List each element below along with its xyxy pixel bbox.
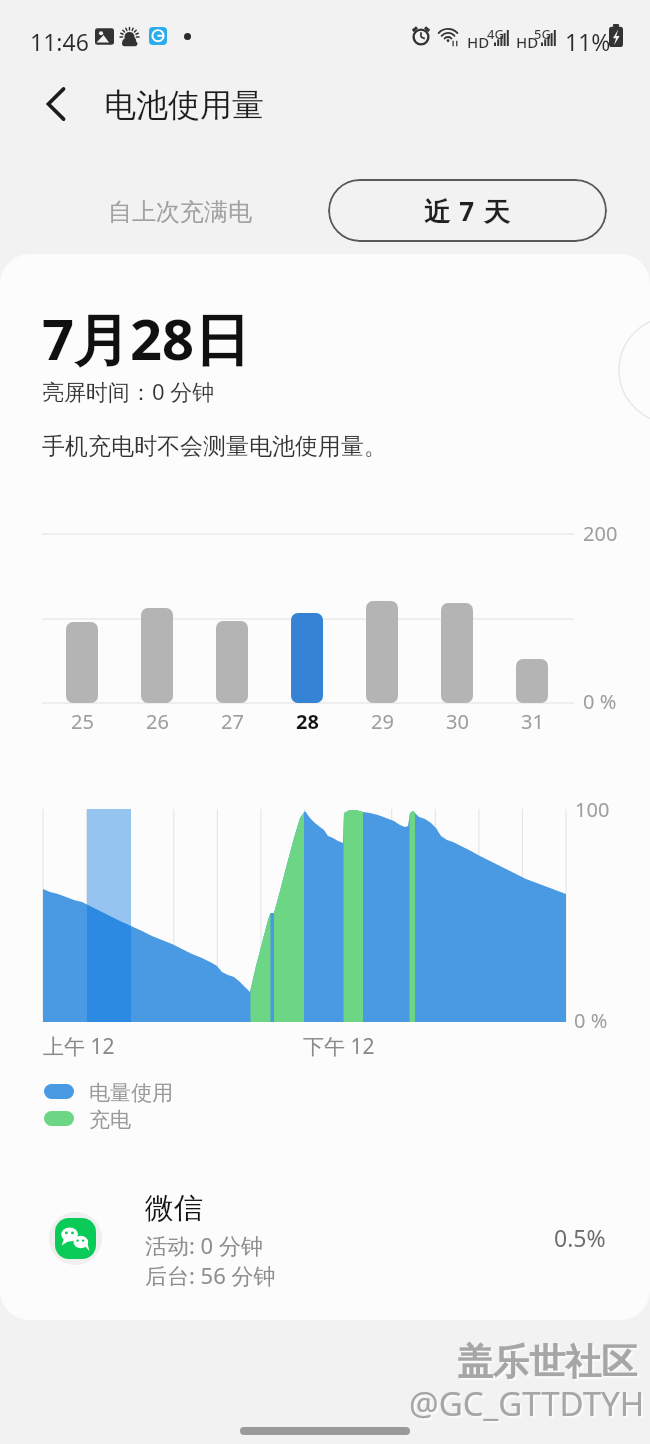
staticText: 11% bbox=[565, 26, 611, 57]
staticText: 电池使用量 bbox=[104, 85, 264, 125]
staticText: 近 7 天 bbox=[424, 193, 511, 229]
staticText: @GC_GTTDTYH bbox=[411, 1383, 647, 1428]
staticText: 29 bbox=[371, 708, 394, 735]
staticText: 11:46 bbox=[30, 26, 89, 57]
staticText: 盖乐世社区 bbox=[459, 1341, 639, 1386]
staticText: 30 bbox=[446, 708, 469, 735]
button[interactable]: 微信 bbox=[0, 1174, 650, 1298]
staticText: 26 bbox=[146, 708, 169, 735]
staticText: 31 bbox=[521, 708, 544, 735]
button[interactable]: Back bbox=[32, 80, 80, 128]
staticText: 25 bbox=[71, 708, 94, 735]
staticText: 0 % bbox=[583, 688, 617, 715]
staticText: 手机充电时不会测量电池使用量。 bbox=[42, 432, 387, 461]
staticText: 27 bbox=[221, 708, 244, 735]
button[interactable]: 自上次充满电 bbox=[91, 179, 269, 241]
staticText: 后台: 56 分钟 bbox=[145, 1260, 276, 1290]
staticText: 下午 12 bbox=[303, 1032, 375, 1061]
staticText: 0.5% bbox=[554, 1222, 606, 1253]
staticText: 5G bbox=[534, 25, 551, 43]
staticText: 活动: 0 分钟 bbox=[145, 1230, 263, 1260]
staticText: HD bbox=[467, 32, 490, 52]
staticText: 充电 bbox=[89, 1107, 131, 1133]
staticText: 上午 12 bbox=[43, 1032, 115, 1061]
staticText: @GC_GTTDTYH bbox=[409, 1381, 645, 1426]
staticText: 200 bbox=[583, 520, 618, 547]
staticText: 微信 bbox=[145, 1190, 203, 1227]
staticText: 盖乐世社区 bbox=[457, 1339, 637, 1384]
staticText: 100 bbox=[575, 796, 610, 823]
staticText: 4G bbox=[487, 25, 504, 43]
staticText: 自上次充满电 bbox=[108, 197, 252, 227]
staticText: 亮屏时间：0 分钟 bbox=[42, 376, 215, 406]
staticText: HD bbox=[516, 32, 539, 52]
staticText: 7月28日 bbox=[42, 300, 251, 376]
button[interactable]: 近 7 天 bbox=[328, 179, 607, 242]
staticText: 0 % bbox=[574, 1007, 608, 1034]
staticText: 电量使用 bbox=[89, 1080, 173, 1106]
staticText: 28 bbox=[296, 708, 319, 735]
